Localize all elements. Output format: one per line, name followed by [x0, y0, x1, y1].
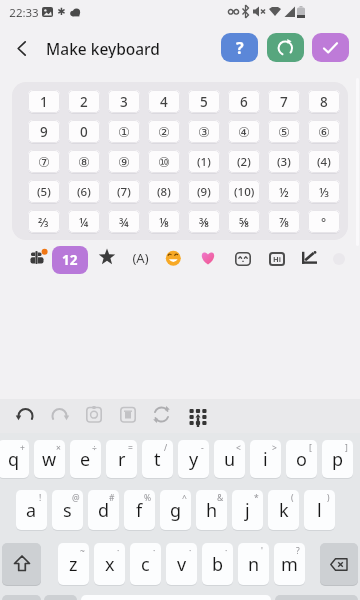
button[interactable]: ⑦ [28, 150, 60, 173]
button[interactable]: m [274, 543, 305, 585]
button[interactable]: g [160, 490, 191, 530]
button[interactable]: ④ [228, 120, 260, 143]
button[interactable] [312, 33, 349, 62]
button[interactable]: x [94, 543, 125, 585]
staticText: (8) [157, 184, 171, 200]
button[interactable]: Hi [269, 252, 285, 266]
button[interactable]: p [322, 440, 353, 478]
button[interactable]: ③ [188, 120, 220, 143]
button[interactable]: q [0, 440, 29, 478]
button[interactable]: 0 [68, 120, 100, 143]
button[interactable]: y [178, 440, 209, 478]
staticText: < [236, 442, 241, 452]
button[interactable]: ½ [268, 180, 300, 203]
button[interactable]: v [166, 543, 197, 585]
button[interactable]: 4 [148, 90, 180, 113]
button[interactable]: u [214, 440, 245, 478]
button[interactable]: ① [108, 120, 140, 143]
staticText: i [263, 447, 268, 472]
button[interactable]: ⅝ [228, 210, 260, 233]
button[interactable]: ⑧ [68, 150, 100, 173]
staticText: d [98, 498, 110, 523]
staticText: o [296, 447, 307, 472]
staticText: · [189, 545, 192, 555]
button[interactable]: 1 [28, 90, 60, 113]
staticText: q [8, 447, 20, 472]
button[interactable]: ⑩ [148, 150, 180, 173]
button[interactable]: ¼ [68, 210, 100, 233]
button[interactable]: o [286, 440, 317, 478]
button[interactable]: ⑥ [308, 120, 340, 143]
button[interactable]: (7) [108, 180, 140, 203]
button[interactable]: 6 [228, 90, 260, 113]
button[interactable] [8, 34, 34, 62]
button[interactable] [2, 543, 41, 585]
button[interactable]: ⅞ [268, 210, 300, 233]
button[interactable]: ② [148, 120, 180, 143]
button[interactable]: n [238, 543, 269, 585]
button[interactable]: ⅛ [148, 210, 180, 233]
button[interactable] [28, 247, 50, 267]
button[interactable] [200, 251, 216, 266]
button[interactable]: d [88, 490, 119, 530]
button[interactable]: (4) [308, 150, 340, 173]
button[interactable] [267, 33, 304, 62]
button[interactable] [17, 405, 35, 424]
staticText: ① [118, 124, 131, 140]
button[interactable]: 12 [52, 246, 88, 274]
staticText: (9) [197, 184, 211, 200]
button[interactable] [120, 406, 136, 423]
staticText: # [109, 492, 115, 502]
button[interactable]: 8 [308, 90, 340, 113]
button[interactable]: h [196, 490, 227, 530]
button[interactable] [98, 248, 116, 266]
button[interactable]: s [52, 490, 83, 530]
button[interactable]: k [268, 490, 299, 530]
button[interactable] [189, 408, 206, 425]
button[interactable]: z [58, 543, 89, 585]
button[interactable]: ⅓ [308, 180, 340, 203]
button[interactable]: 3 [108, 90, 140, 113]
button[interactable]: ⑤ [268, 120, 300, 143]
button[interactable] [50, 405, 68, 424]
button[interactable]: c [130, 543, 161, 585]
button[interactable]: w [34, 440, 65, 478]
button[interactable]: ⅜ [188, 210, 220, 233]
button[interactable]: (3) [268, 150, 300, 173]
button[interactable]: 2 [68, 90, 100, 113]
button[interactable]: 5 [188, 90, 220, 113]
button[interactable] [86, 406, 102, 423]
button[interactable]: (1) [188, 150, 220, 173]
button[interactable]: 7 [268, 90, 300, 113]
button[interactable]: (8) [148, 180, 180, 203]
button[interactable]: b [202, 543, 233, 585]
button[interactable]: (2) [228, 150, 260, 173]
button[interactable]: ⅔ [28, 210, 60, 233]
staticText: ④ [238, 124, 251, 140]
staticText: z [69, 552, 78, 577]
button[interactable]: ° [308, 210, 340, 233]
button[interactable]: ¾ [108, 210, 140, 233]
button[interactable]: r [106, 440, 137, 478]
button[interactable]: (6) [68, 180, 100, 203]
button[interactable] [153, 406, 170, 423]
button[interactable] [235, 252, 251, 266]
button[interactable]: (10) [228, 180, 260, 203]
button[interactable]: ⑨ [108, 150, 140, 173]
button[interactable]: ? [221, 33, 258, 62]
staticText: ⑦ [38, 154, 51, 170]
button[interactable]: 9 [28, 120, 60, 143]
button[interactable]: t [142, 440, 173, 478]
button[interactable]: (9) [188, 180, 220, 203]
button[interactable]: j [232, 490, 263, 530]
button[interactable]: l [304, 490, 335, 530]
button[interactable]: f [124, 490, 155, 530]
button[interactable] [301, 251, 318, 265]
button[interactable] [320, 543, 358, 585]
button[interactable]: (5) [28, 180, 60, 203]
button[interactable]: a [16, 490, 47, 530]
button[interactable]: i [250, 440, 281, 478]
staticText: ( [291, 492, 294, 502]
button[interactable]: e [70, 440, 101, 478]
button[interactable] [166, 251, 181, 266]
